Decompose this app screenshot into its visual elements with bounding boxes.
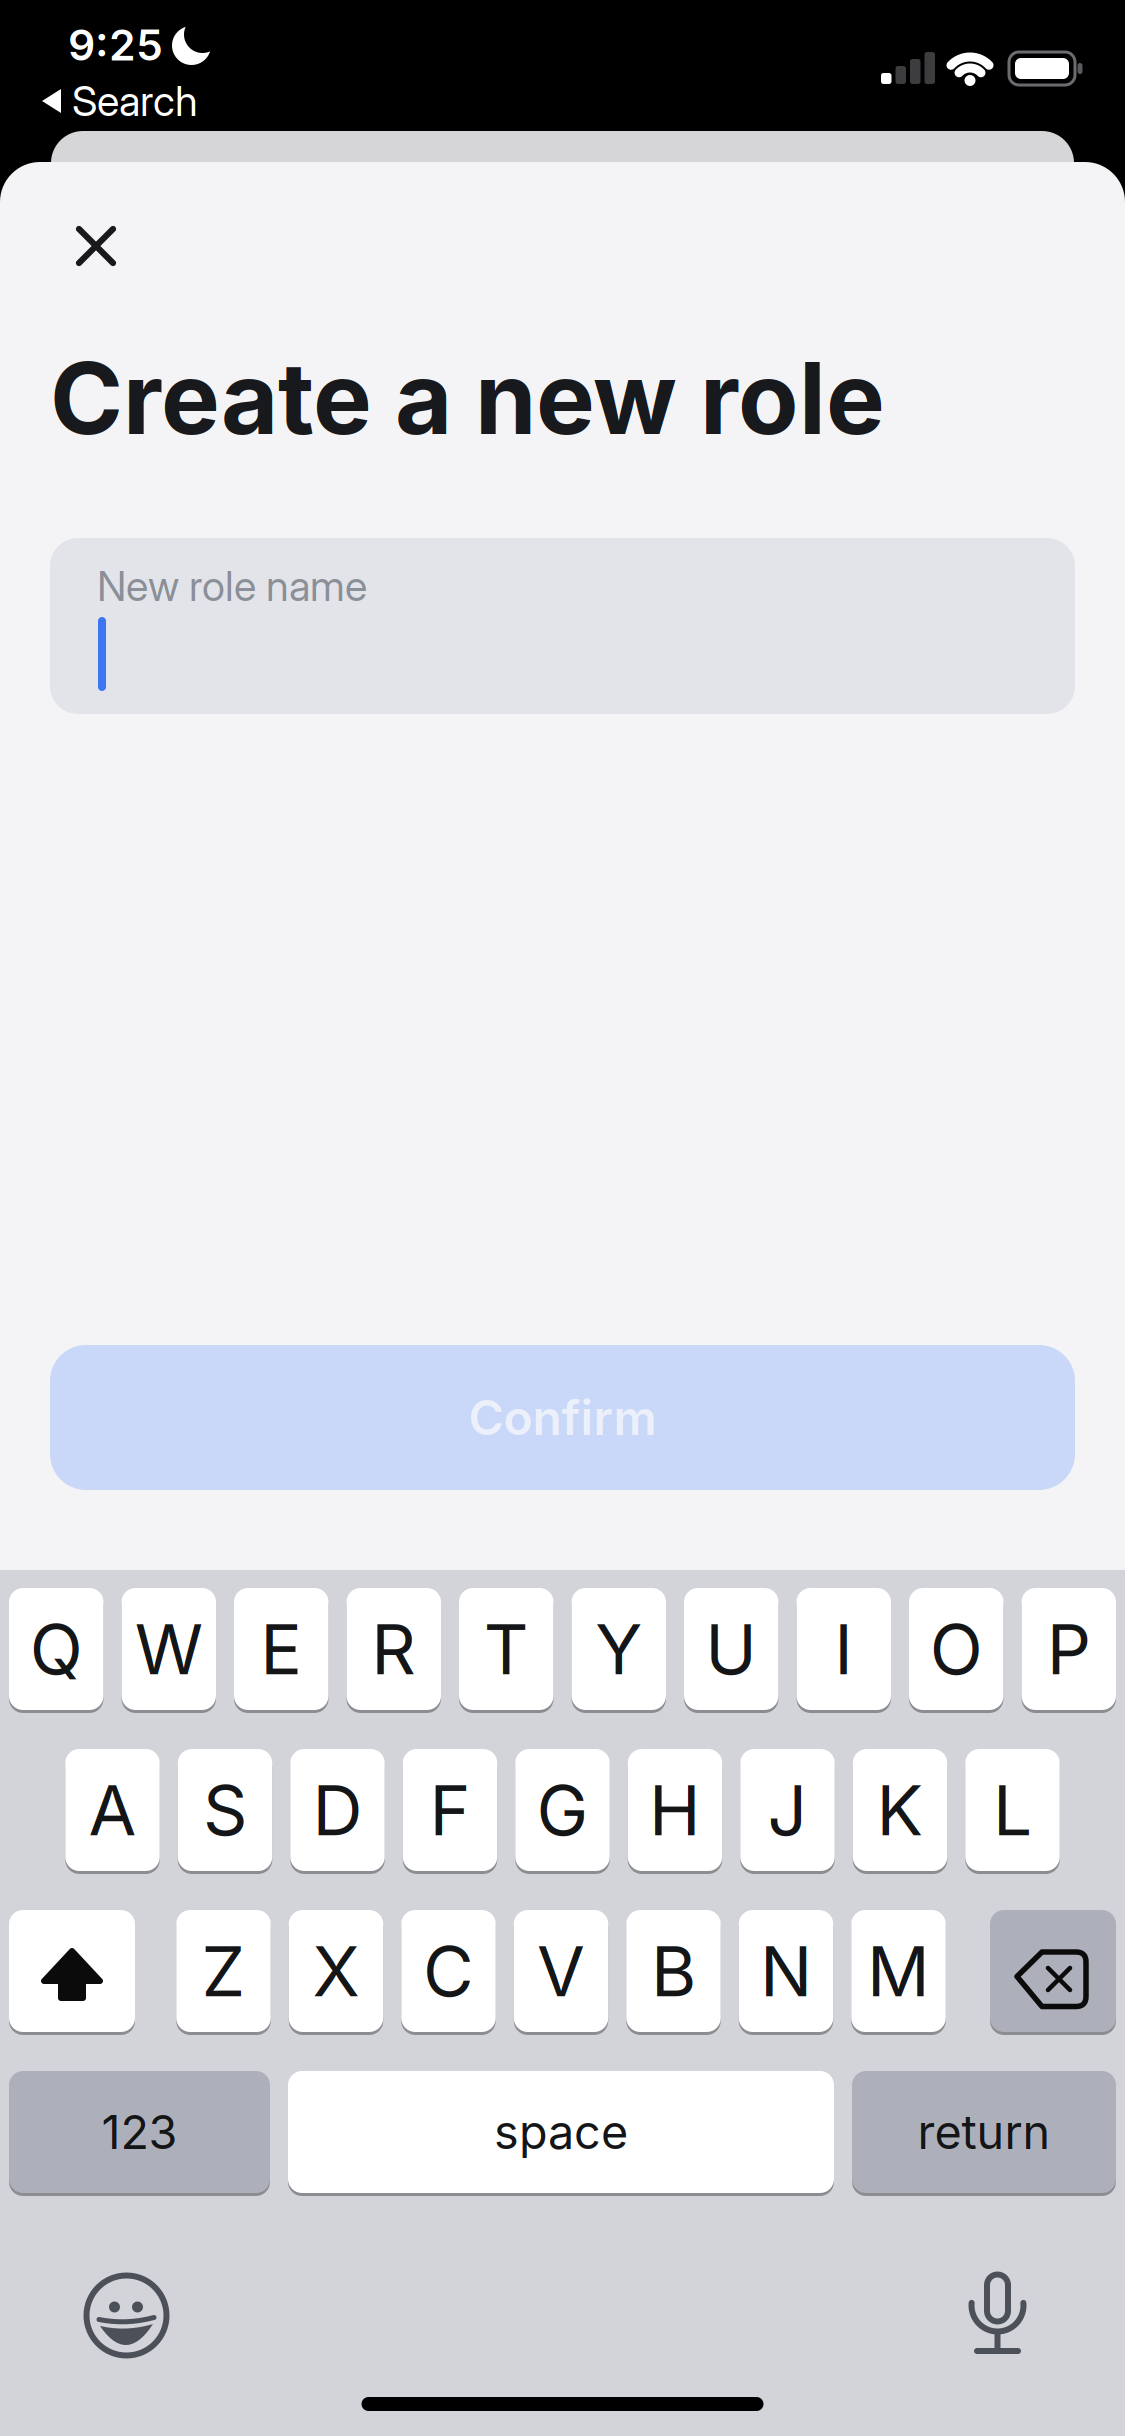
staticText: C [423, 1930, 474, 2012]
staticText: R [371, 1608, 416, 1690]
staticText: D [312, 1769, 362, 1851]
staticText: N [760, 1930, 812, 2012]
button[interactable]: Confirm [50, 1345, 1075, 1490]
staticText: V [537, 1930, 585, 2012]
staticText: J [767, 1769, 807, 1851]
button[interactable]: G [515, 1749, 610, 1871]
button[interactable]: P [1021, 1588, 1116, 1710]
staticText: Confirm [468, 1389, 656, 1446]
staticText: Search [72, 77, 198, 125]
button[interactable]: M [851, 1910, 946, 2032]
button[interactable]: E [234, 1588, 328, 1710]
button[interactable]: T [459, 1588, 553, 1710]
button[interactable]: return [852, 2071, 1116, 2193]
staticText: T [484, 1608, 529, 1690]
staticText: L [993, 1769, 1032, 1851]
button[interactable]: A [65, 1749, 160, 1871]
button[interactable]: K [853, 1749, 947, 1871]
button[interactable]: W [121, 1588, 216, 1710]
staticText: B [651, 1930, 696, 2012]
staticText: W [135, 1608, 203, 1690]
staticText: X [312, 1930, 359, 2012]
staticText: Z [201, 1930, 245, 2012]
staticText: M [867, 1930, 930, 2012]
staticText: A [88, 1769, 136, 1851]
staticText: 123 [101, 2104, 177, 2160]
staticText: K [876, 1769, 923, 1851]
button[interactable]: space [288, 2071, 834, 2193]
staticText: P [1047, 1608, 1091, 1690]
button[interactable]: J [740, 1749, 835, 1871]
button[interactable]: Delete [990, 1910, 1116, 2032]
button[interactable]: Q [9, 1588, 103, 1710]
button[interactable]: H [628, 1749, 722, 1871]
staticText: Y [595, 1608, 642, 1690]
button[interactable]: U [684, 1588, 778, 1710]
button[interactable]: F [403, 1749, 497, 1871]
staticText: Create a new role [50, 340, 885, 456]
staticText: return [917, 2104, 1050, 2160]
staticText: U [705, 1608, 757, 1690]
button[interactable]: Dictate [953, 2268, 1042, 2357]
staticText: I [834, 1608, 853, 1690]
staticText: O [930, 1608, 983, 1690]
staticText: New role name [97, 562, 367, 610]
staticText: G [536, 1769, 588, 1851]
staticText: H [649, 1769, 701, 1851]
button[interactable]: Emoji [82, 2271, 171, 2360]
staticText: E [260, 1608, 302, 1690]
button[interactable]: B [626, 1910, 721, 2032]
button[interactable]: I [796, 1588, 891, 1710]
button[interactable]: X [289, 1910, 383, 2032]
staticText: space [494, 2104, 628, 2160]
button[interactable]: Shift [9, 1910, 135, 2032]
button[interactable]: Search [42, 77, 342, 125]
button[interactable]: Close [71, 221, 120, 270]
staticText: S [203, 1769, 247, 1851]
button[interactable]: Z [176, 1910, 271, 2032]
button[interactable]: O [909, 1588, 1003, 1710]
staticText: F [429, 1769, 470, 1851]
staticText: Q [30, 1608, 83, 1690]
button[interactable]: C [401, 1910, 496, 2032]
button[interactable]: 123 [9, 2071, 270, 2193]
button[interactable]: D [290, 1749, 385, 1871]
button[interactable]: Y [571, 1588, 666, 1710]
button[interactable]: R [346, 1588, 441, 1710]
button[interactable]: S [178, 1749, 272, 1871]
button[interactable]: New role name [50, 538, 1075, 714]
button[interactable]: L [965, 1749, 1060, 1871]
button[interactable]: N [739, 1910, 833, 2032]
staticText: 9:25 [68, 20, 163, 70]
button[interactable]: V [514, 1910, 608, 2032]
